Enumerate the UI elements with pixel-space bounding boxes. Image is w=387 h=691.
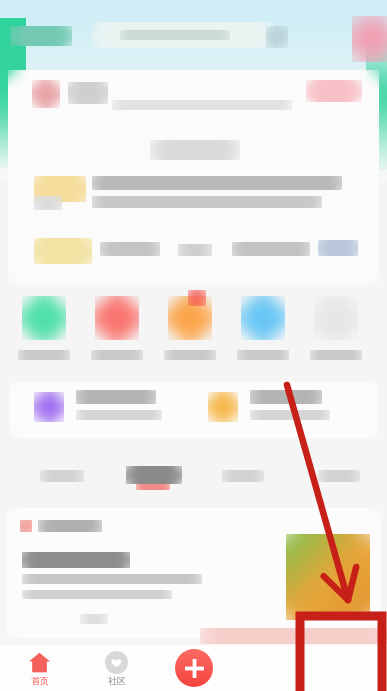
- staticText: 首页: [31, 675, 49, 686]
- button[interactable]: 社区: [78, 645, 155, 691]
- staticText: 社区: [108, 675, 126, 686]
- button[interactable]: Add: [155, 645, 232, 691]
- button[interactable]: 首页: [0, 645, 78, 691]
